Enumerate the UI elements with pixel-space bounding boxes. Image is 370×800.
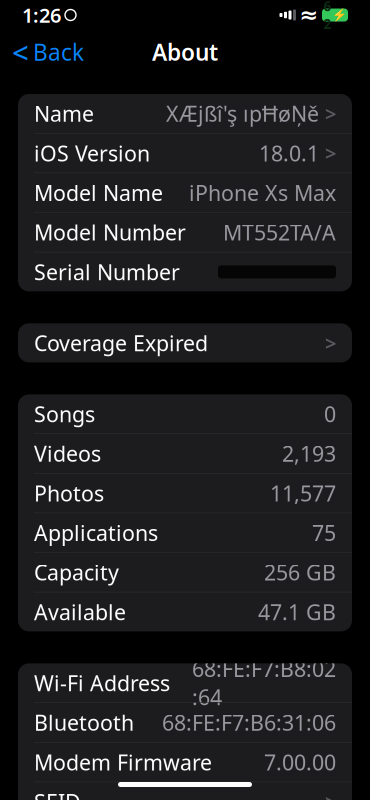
staticText: XÆjßî'ş ıpĦøŅě — [166, 99, 319, 128]
staticText: Coverage Expired — [34, 329, 208, 357]
staticText: 68:FE:F7:B6:31:06 — [162, 708, 336, 737]
staticText: Bluetooth — [34, 708, 134, 737]
staticText: > — [325, 100, 336, 127]
staticText: Applications — [34, 518, 158, 547]
button[interactable]: Capacity — [18, 553, 352, 592]
staticText: > — [325, 788, 336, 800]
button[interactable]: Songs — [18, 394, 352, 433]
button[interactable]: < — [0, 32, 96, 72]
staticText: About — [152, 37, 218, 67]
staticText: Capacity — [34, 558, 119, 586]
staticText: > — [325, 140, 336, 166]
staticText: Serial Number — [34, 258, 180, 286]
staticText: 47.1 GB — [258, 598, 336, 626]
button[interactable]: Model Number — [18, 213, 352, 252]
staticText: > — [325, 330, 336, 356]
button[interactable]: Wi-Fi Address — [18, 663, 352, 702]
button[interactable]: Bluetooth — [18, 703, 352, 742]
button[interactable]: Applications — [18, 513, 352, 552]
staticText: Available — [34, 598, 126, 626]
staticText: 2,193 — [282, 439, 336, 468]
staticText: ⚡ — [331, 8, 346, 22]
staticText: Model Number — [34, 218, 186, 246]
button[interactable]: Videos — [18, 434, 352, 473]
staticText: 68:FE:F7:B8:02:64 — [192, 655, 336, 711]
staticText: 0 — [324, 400, 336, 428]
button[interactable]: Photos — [18, 474, 352, 513]
staticText: 256 GB — [264, 558, 336, 586]
staticText: Photos — [34, 479, 104, 507]
staticText: 1:26 — [22, 2, 61, 28]
button[interactable]: SEID — [18, 782, 352, 800]
staticText: 11,577 — [270, 479, 336, 507]
staticText: < — [12, 32, 29, 71]
staticText: Wi-Fi Address — [34, 669, 170, 697]
staticText: Videos — [34, 439, 101, 468]
button[interactable]: Coverage Expired — [18, 323, 352, 362]
staticText: 7.00.00 — [264, 748, 336, 776]
button[interactable]: Modem Firmware — [18, 743, 352, 782]
staticText: iPhone Xs Max — [189, 178, 336, 207]
staticText: 75 — [312, 518, 336, 547]
button[interactable]: Serial Number — [18, 252, 352, 291]
button[interactable]: Name — [18, 94, 352, 133]
staticText: Modem Firmware — [34, 748, 212, 776]
button[interactable]: iOS Version — [18, 134, 352, 173]
staticText: Name — [34, 99, 94, 128]
staticText: 62 — [323, 0, 331, 33]
button[interactable]: Available — [18, 592, 352, 631]
staticText: Back — [33, 37, 84, 67]
staticText: iOS Version — [34, 139, 150, 167]
staticText: SEID — [34, 787, 81, 800]
staticText: MT552TA/A — [223, 218, 336, 246]
button[interactable]: Model Name — [18, 173, 352, 212]
staticText: 18.0.1 — [259, 139, 319, 167]
staticText: ≈ — [299, 2, 318, 28]
staticText: Songs — [34, 400, 95, 428]
staticText: Model Name — [34, 178, 163, 207]
